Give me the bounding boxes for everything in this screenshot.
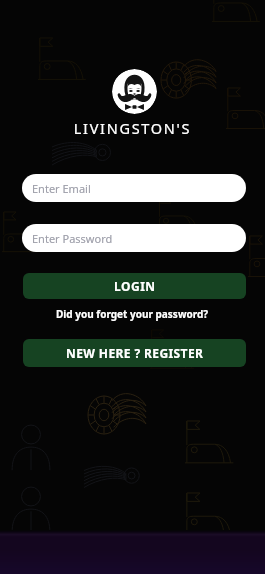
button[interactable]: Livingston's logo <box>112 69 157 114</box>
button[interactable]: NEW HERE ? REGISTER <box>23 339 246 367</box>
staticText: Enter Password <box>32 231 113 246</box>
button[interactable]: Did you forget your password? <box>0 305 265 323</box>
staticText: Enter Email <box>32 181 91 196</box>
button[interactable]: Enter Password <box>22 224 246 252</box>
staticText: NEW HERE ? REGISTER <box>66 345 204 361</box>
button[interactable]: LOGIN <box>23 273 246 299</box>
staticText: LIVINGSTON'S <box>0 118 265 138</box>
button[interactable]: Enter Email <box>22 174 246 202</box>
staticText: Did you forget your password? <box>56 307 209 321</box>
staticText: LOGIN <box>114 278 156 294</box>
